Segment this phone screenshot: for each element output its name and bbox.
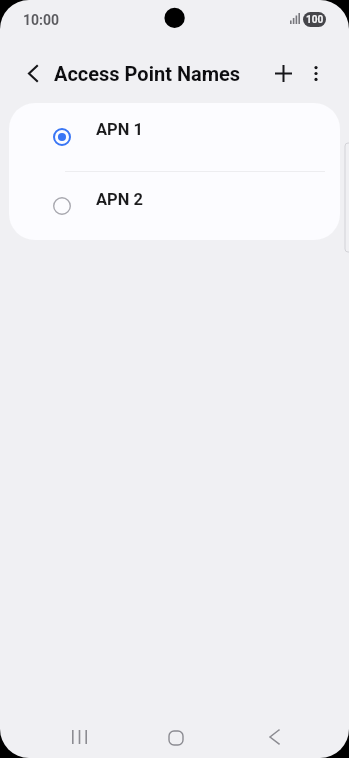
button[interactable]: Navigate up <box>13 53 53 93</box>
staticText: 100 <box>306 14 324 26</box>
button[interactable]: More options <box>296 53 336 93</box>
staticText: 10:00 <box>23 12 60 28</box>
staticText: APN 1 <box>96 120 143 139</box>
staticText: APN 2 <box>96 190 143 209</box>
button[interactable]: Recent apps <box>58 716 100 758</box>
button[interactable]: Add <box>263 53 303 93</box>
button[interactable]: Home <box>155 717 197 758</box>
staticText: Access Point Names <box>54 62 241 85</box>
button[interactable]: Back <box>253 716 295 758</box>
button[interactable]: APN 2 <box>9 173 340 240</box>
button[interactable]: APN 1 <box>9 103 340 172</box>
